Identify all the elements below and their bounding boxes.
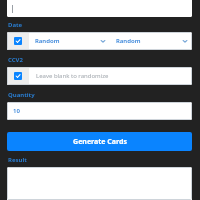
staticText: Generate Cards [73, 137, 127, 147]
staticText: CCV2 [8, 56, 23, 64]
button[interactable]: Random [110, 32, 192, 50]
button[interactable] [7, 0, 192, 17]
staticText: 10 [13, 107, 20, 115]
staticText: Random [35, 37, 100, 45]
staticText: Random [116, 37, 182, 45]
staticText: Date [8, 21, 23, 29]
staticText: Quantity [8, 91, 35, 99]
button[interactable]: Random [29, 32, 110, 50]
button[interactable]: Toggle option [7, 67, 192, 85]
staticText: Leave blank to randomize [36, 72, 109, 80]
staticText: Result [8, 156, 27, 164]
button[interactable]: 10 [7, 102, 192, 120]
button[interactable] [7, 167, 192, 200]
button[interactable]: Generate Cards [7, 132, 192, 151]
button[interactable]: Toggle option [14, 37, 22, 45]
button[interactable]: Toggle option [14, 72, 22, 80]
